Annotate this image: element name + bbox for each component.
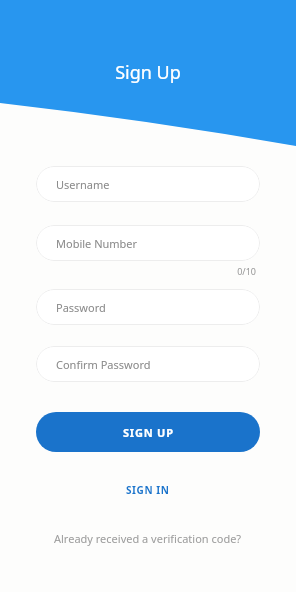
- staticText: SIGN IN: [126, 483, 170, 497]
- staticText: Confirm Password: [56, 357, 151, 372]
- button[interactable]: SIGN IN: [36, 480, 260, 500]
- button[interactable]: Username: [36, 166, 260, 202]
- button[interactable]: Confirm Password: [36, 346, 260, 382]
- button[interactable]: Mobile Number: [36, 225, 260, 261]
- button[interactable]: SIGN UP: [36, 412, 260, 452]
- button[interactable]: Already received a verification code?: [36, 528, 260, 548]
- staticText: Password: [56, 300, 106, 315]
- button[interactable]: Password: [36, 289, 260, 325]
- staticText: Username: [56, 177, 110, 192]
- staticText: Sign Up: [0, 60, 296, 85]
- staticText: Already received a verification code?: [54, 531, 242, 546]
- staticText: SIGN UP: [123, 425, 174, 440]
- staticText: Mobile Number: [56, 236, 138, 251]
- staticText: 0/10: [36, 265, 256, 277]
